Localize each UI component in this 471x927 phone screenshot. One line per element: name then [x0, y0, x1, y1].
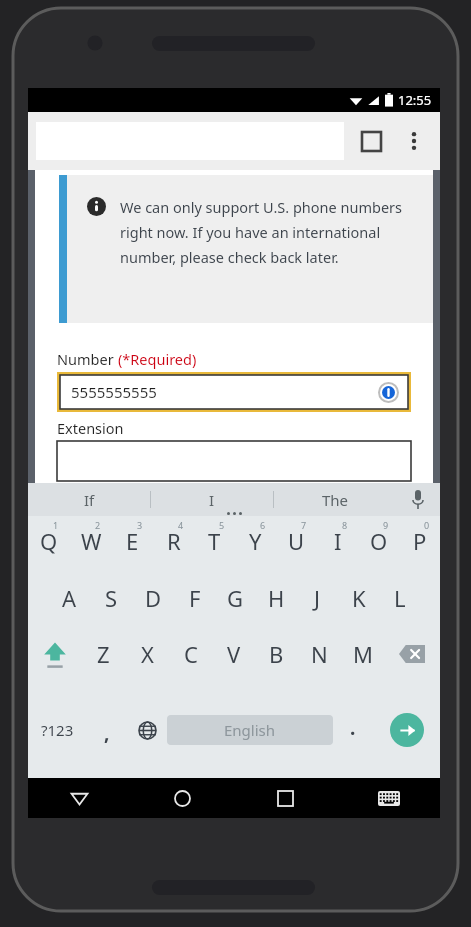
staticText: Q	[40, 526, 58, 556]
button[interactable]: Z	[81, 626, 125, 682]
button[interactable]: F	[174, 570, 215, 626]
button[interactable]: Change language	[127, 682, 167, 778]
staticText: 5555555555	[71, 382, 157, 402]
button[interactable]: 3	[112, 516, 153, 570]
staticText: D	[145, 583, 162, 613]
button[interactable]: Tabs	[354, 124, 388, 158]
button[interactable]: C	[169, 626, 212, 682]
staticText: P	[413, 526, 427, 556]
staticText: E	[126, 526, 139, 556]
staticText: H	[268, 583, 285, 613]
button[interactable]: More options	[398, 125, 430, 157]
staticText: (*Required)	[118, 349, 197, 369]
staticText: F	[189, 583, 201, 613]
button[interactable]: 8	[317, 516, 358, 570]
staticText: G	[227, 583, 244, 613]
button[interactable]: I	[151, 483, 273, 516]
staticText: 8	[342, 519, 348, 531]
staticText: 5	[219, 519, 225, 531]
button[interactable]: L	[379, 570, 420, 626]
staticText: Number	[57, 349, 118, 369]
staticText: 6	[260, 519, 266, 531]
staticText: ,	[104, 720, 110, 746]
button[interactable]: Recents	[234, 778, 337, 818]
button[interactable]: ,	[87, 682, 127, 778]
button[interactable]: X	[125, 626, 169, 682]
staticText: J	[314, 583, 321, 613]
button[interactable]: Delete	[384, 626, 440, 682]
staticText: 3	[137, 519, 143, 531]
button[interactable]: Home	[131, 778, 234, 818]
button[interactable]: N	[298, 626, 341, 682]
button[interactable]: 7	[276, 516, 317, 570]
staticText: Y	[249, 526, 262, 556]
staticText: .	[350, 715, 356, 741]
staticText: W	[81, 526, 102, 556]
staticText: I	[334, 526, 342, 556]
staticText: N	[311, 639, 328, 669]
button[interactable]: Enter	[373, 682, 440, 778]
button[interactable]: 0	[399, 516, 440, 570]
button[interactable]: ?123	[28, 682, 87, 778]
button[interactable]: G	[215, 570, 256, 626]
staticText: 9	[383, 519, 389, 531]
staticText: Z	[97, 639, 110, 669]
staticText: 12:55	[398, 91, 432, 109]
button[interactable]	[57, 441, 411, 481]
staticText: R	[167, 526, 181, 556]
staticText: 1	[53, 519, 59, 531]
staticText: 7	[301, 519, 307, 531]
staticText: The	[322, 490, 349, 510]
staticText: I	[209, 490, 215, 510]
button[interactable]: 4	[153, 516, 194, 570]
button[interactable]: The	[274, 483, 396, 516]
button[interactable]: D	[132, 570, 174, 626]
button[interactable]: M	[341, 626, 384, 682]
staticText: M	[353, 639, 373, 669]
staticText: English	[224, 720, 276, 740]
button[interactable]: K	[338, 570, 379, 626]
button[interactable]: English	[167, 715, 333, 745]
button[interactable]: H	[256, 570, 297, 626]
button[interactable]: 2	[70, 516, 112, 570]
staticText: 0	[424, 519, 430, 531]
staticText: C	[184, 639, 198, 669]
button[interactable]: Back	[28, 778, 131, 818]
staticText: V	[227, 639, 241, 669]
button[interactable]: 5	[194, 516, 235, 570]
button[interactable]: Shift	[28, 626, 81, 682]
button[interactable]: 6	[235, 516, 276, 570]
button[interactable]: S	[90, 570, 132, 626]
staticText: We can only support U.S. phone numbers r…	[120, 197, 415, 267]
button[interactable]: 1	[28, 516, 70, 570]
staticText: 4	[178, 519, 184, 531]
staticText: S	[105, 583, 118, 613]
button[interactable]: V	[212, 626, 255, 682]
staticText: U	[288, 526, 305, 556]
staticText: O	[370, 526, 388, 556]
button[interactable]: If	[28, 483, 150, 516]
staticText: Extension	[57, 418, 124, 438]
staticText: If	[84, 490, 95, 510]
button[interactable]: 9	[358, 516, 399, 570]
button[interactable]: A	[48, 570, 90, 626]
button[interactable]: J	[297, 570, 338, 626]
button[interactable]: B	[255, 626, 298, 682]
button[interactable]: Hide keyboard	[337, 778, 440, 818]
button[interactable]: 5555555555	[60, 375, 408, 409]
staticText: X	[141, 639, 154, 669]
staticText: L	[394, 583, 406, 613]
staticText: A	[62, 583, 77, 613]
button[interactable]: Voice input	[396, 483, 440, 516]
staticText: 2	[95, 519, 101, 531]
staticText: ?123	[41, 720, 74, 740]
button[interactable]: .	[333, 682, 373, 778]
staticText: T	[208, 526, 221, 556]
button[interactable]: Info	[377, 381, 399, 403]
staticText: K	[352, 583, 366, 613]
staticText: B	[269, 639, 284, 669]
